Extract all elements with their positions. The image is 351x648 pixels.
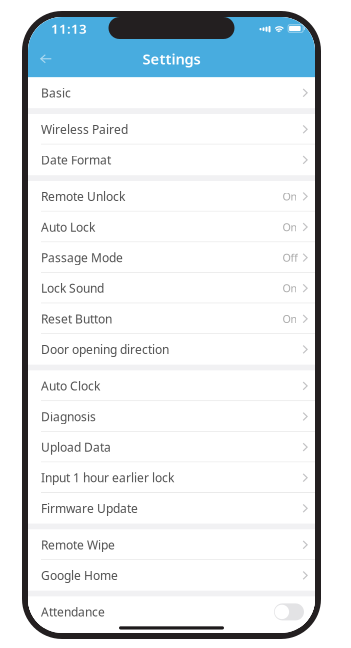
button[interactable]: Date Format bbox=[28, 145, 315, 175]
button[interactable]: Back bbox=[28, 44, 64, 74]
staticText: Lock Sound bbox=[41, 280, 104, 296]
button[interactable]: Auto Lock bbox=[28, 212, 315, 242]
staticText: Google Home bbox=[41, 567, 118, 583]
button[interactable]: Wireless Paired bbox=[28, 114, 315, 145]
button[interactable]: Door opening direction bbox=[28, 334, 315, 365]
button[interactable]: Basic bbox=[28, 77, 315, 108]
staticText: Door opening direction bbox=[41, 341, 169, 357]
staticText: Diagnosis bbox=[41, 408, 96, 424]
staticText: Auto Lock bbox=[41, 219, 95, 235]
button[interactable]: Auto Clock bbox=[28, 371, 315, 401]
staticText: Auto Clock bbox=[41, 378, 100, 394]
staticText: Upload Data bbox=[41, 439, 111, 455]
button[interactable]: Remote Wipe bbox=[28, 529, 315, 560]
button[interactable]: Remote Unlock bbox=[28, 181, 315, 212]
staticText: On bbox=[282, 312, 297, 326]
button[interactable]: Google Home bbox=[28, 560, 315, 591]
staticText: Passage Mode bbox=[41, 250, 123, 265]
staticText: Remote Unlock bbox=[41, 188, 125, 204]
button[interactable]: Firmware Update bbox=[28, 493, 315, 524]
button[interactable]: Input 1 hour earlier lock bbox=[28, 462, 315, 493]
button[interactable]: Upload Data bbox=[28, 432, 315, 462]
button[interactable]: Lock Sound bbox=[28, 273, 315, 303]
staticText: Off bbox=[282, 250, 297, 265]
staticText: On bbox=[282, 281, 297, 295]
staticText: Date Format bbox=[41, 152, 111, 168]
staticText: Attendance bbox=[41, 604, 105, 620]
button[interactable]: Passage Mode bbox=[28, 242, 315, 273]
staticText: Input 1 hour earlier lock bbox=[41, 470, 174, 486]
staticText: Wireless Paired bbox=[41, 121, 128, 137]
staticText: On bbox=[282, 189, 297, 203]
button[interactable]: Diagnosis bbox=[28, 401, 315, 432]
button[interactable]: Attendance bbox=[28, 597, 315, 627]
staticText: Settings bbox=[142, 49, 200, 68]
staticText: 11:13 bbox=[51, 20, 87, 37]
staticText: Reset Button bbox=[41, 311, 112, 327]
staticText: On bbox=[282, 220, 297, 234]
staticText: Firmware Update bbox=[41, 500, 138, 516]
button[interactable]: Reset Button bbox=[28, 303, 315, 334]
staticText: Basic bbox=[41, 85, 71, 101]
staticText: Remote Wipe bbox=[41, 537, 115, 553]
